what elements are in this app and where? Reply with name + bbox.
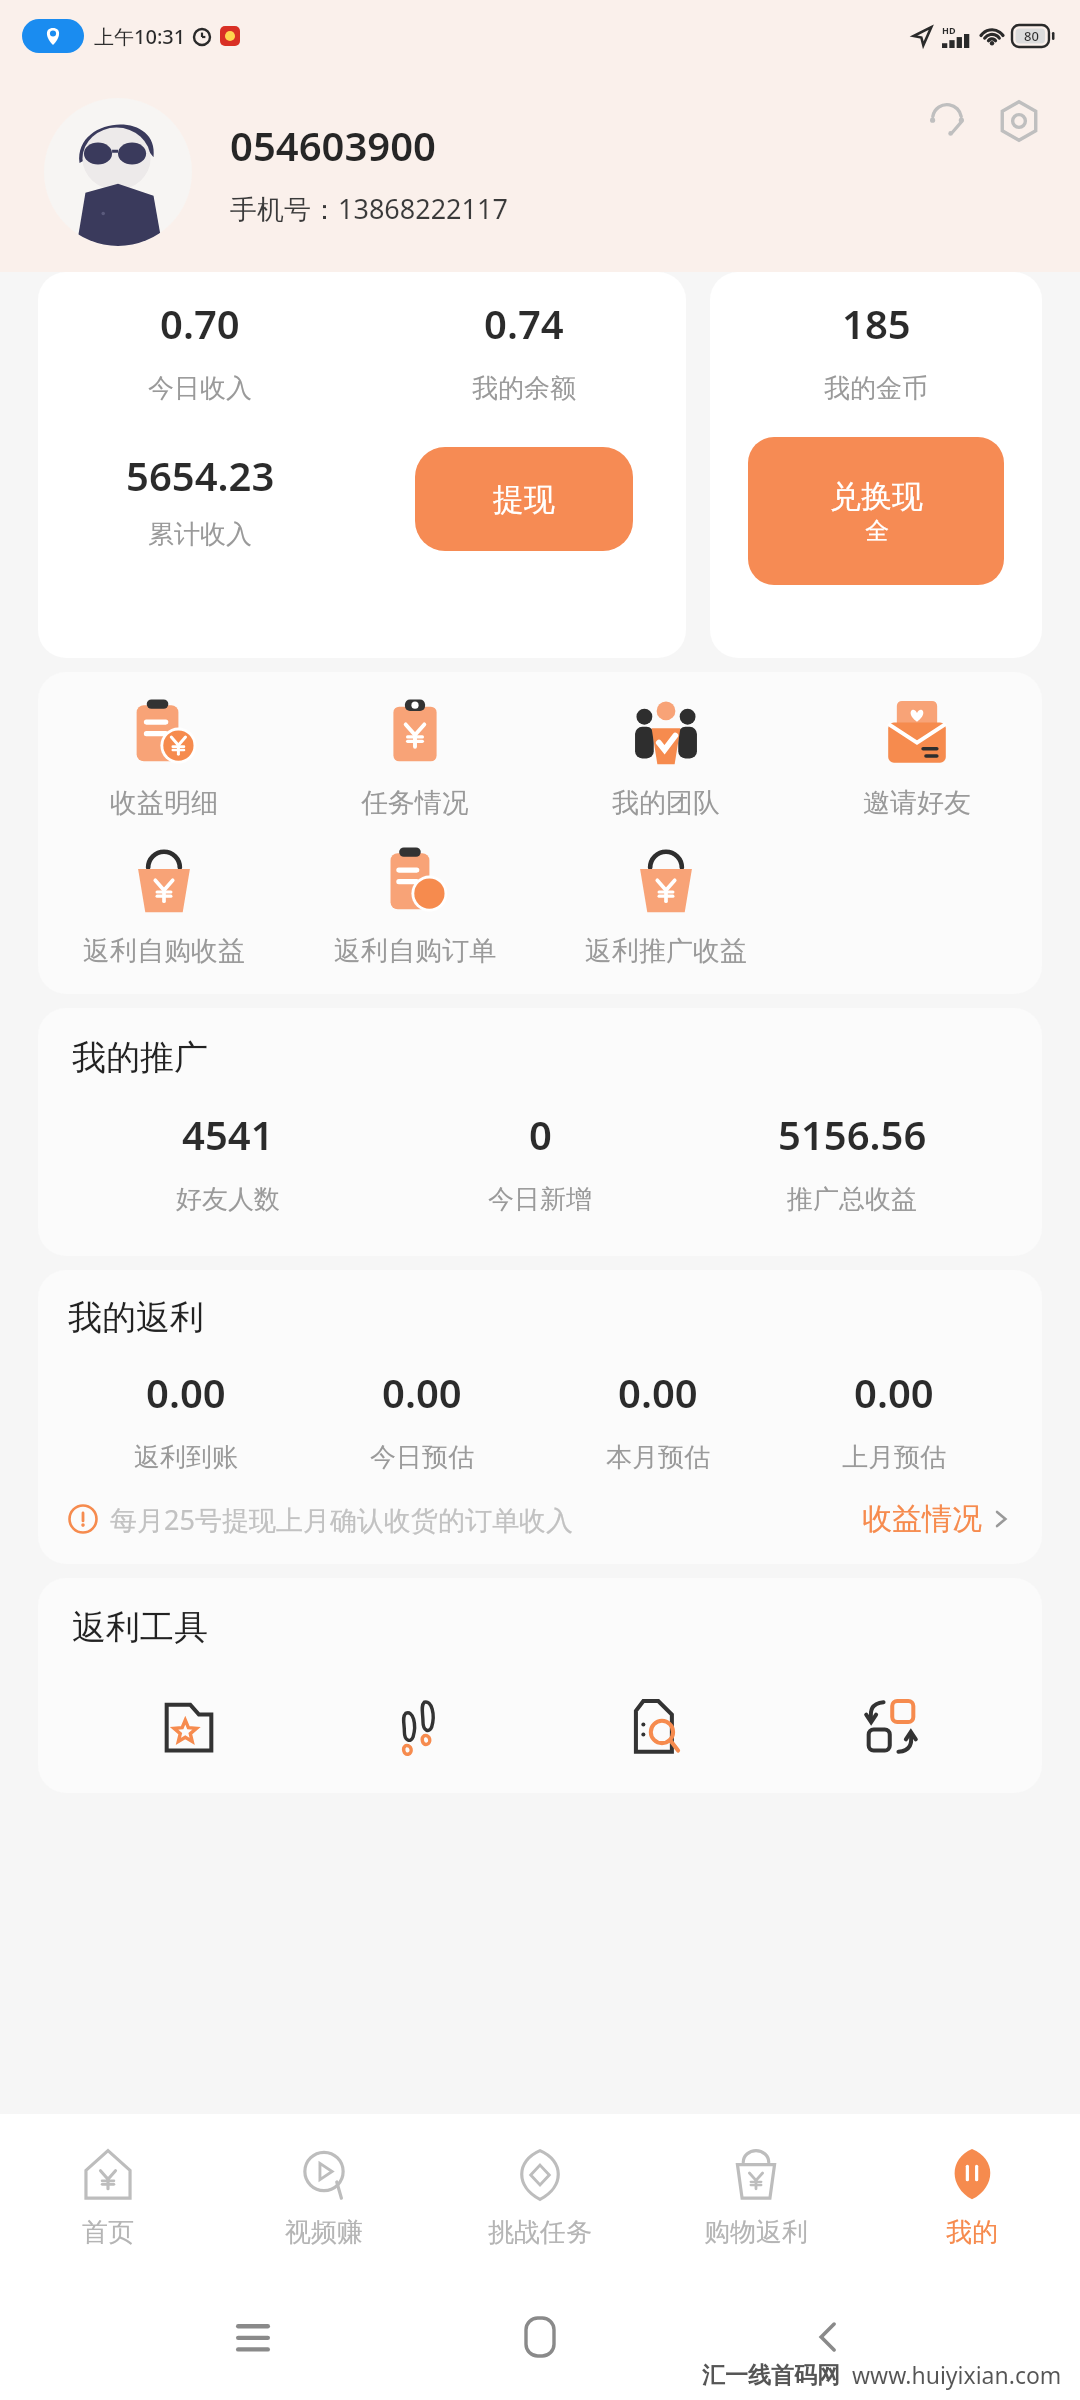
staticText: 返利工具 [72, 1606, 208, 1649]
staticText: www.huiyixian.com [852, 2359, 1062, 2390]
staticText: 购物返利 [704, 2216, 808, 2249]
staticText: 185 [842, 296, 911, 350]
button[interactable]: 返利自购收益 [38, 846, 289, 968]
button[interactable]: Order search [540, 1679, 774, 1775]
staticText: 我的团队 [612, 786, 720, 820]
button[interactable]: 提现 [415, 447, 633, 551]
staticText: 好友人数 [176, 1183, 280, 1216]
staticText: 上午10:31 [94, 23, 186, 50]
staticText: 返利自购订单 [334, 934, 496, 968]
button[interactable]: Back [793, 2302, 863, 2372]
staticText: 5654.23 [126, 448, 275, 502]
staticText: 我的推广 [72, 1036, 208, 1079]
staticText: 邀请好友 [863, 786, 971, 820]
staticText: 今日收入 [148, 372, 252, 405]
staticText: 今日预估 [370, 1441, 474, 1474]
staticText: 累计收入 [148, 518, 252, 551]
staticText: 每月25号提现上月确认收货的订单收入 [110, 1501, 854, 1538]
staticText: 我的 [946, 2216, 998, 2249]
staticText: 5156.56 [778, 1107, 927, 1161]
staticText: 4541 [182, 1107, 274, 1161]
staticText: 我的返利 [68, 1296, 204, 1339]
staticText: 本月预估 [606, 1441, 710, 1474]
staticText: 054603900 [230, 118, 436, 172]
staticText: 0.00 [146, 1365, 226, 1419]
staticText: 0.00 [618, 1365, 698, 1419]
button[interactable]: 返利推广收益 [540, 846, 791, 968]
staticText: 收益明细 [110, 786, 218, 820]
button[interactable]: 挑战任务 [432, 2114, 648, 2280]
button[interactable]: Settings [992, 94, 1046, 148]
staticText: 0.00 [854, 1365, 934, 1419]
staticText: 兑换现 [830, 477, 923, 516]
staticText: 80 [1024, 27, 1039, 45]
button[interactable]: 我的推广 [38, 1008, 1042, 1256]
button[interactable]: Transfer [774, 1679, 1008, 1775]
button[interactable]: Footprints [306, 1679, 540, 1775]
button[interactable]: 185 [710, 272, 1042, 658]
staticText: 提现 [493, 480, 555, 519]
button[interactable]: 首页 [0, 2114, 216, 2280]
staticText: 全 [865, 516, 889, 546]
staticText: 视频赚 [285, 2216, 363, 2249]
staticText: 0.00 [382, 1365, 462, 1419]
staticText: 我的余额 [472, 372, 576, 405]
staticText: 任务情况 [361, 786, 469, 820]
staticText: 手机号：13868222117 [230, 190, 508, 227]
button[interactable]: 视频赚 [216, 2114, 432, 2280]
button[interactable]: Home [505, 2302, 575, 2372]
button[interactable]: Favorites [72, 1679, 306, 1775]
staticText: HD [942, 24, 956, 36]
staticText: 挑战任务 [488, 2216, 592, 2249]
button[interactable]: 0.70 [38, 272, 686, 658]
staticText: 首页 [82, 2216, 134, 2249]
staticText: 今日新增 [488, 1183, 592, 1216]
button[interactable]: 购物返利 [648, 2114, 864, 2280]
staticText: 汇一线首码网 [702, 2361, 840, 2390]
staticText: 我的金币 [824, 372, 928, 405]
staticText: 0 [529, 1107, 552, 1161]
staticText: 收益情况 [862, 1500, 982, 1538]
staticText: 返利自购收益 [83, 934, 245, 968]
button[interactable]: 收益明细 [38, 698, 289, 820]
button[interactable]: 我的团队 [540, 698, 791, 820]
button[interactable]: 收益情况 [862, 1500, 1012, 1538]
button[interactable]: 兑换现 [748, 437, 1004, 585]
button[interactable]: 我的 [864, 2114, 1080, 2280]
staticText: 推广总收益 [787, 1183, 917, 1216]
button[interactable]: 邀请好友 [791, 698, 1042, 820]
staticText: 上月预估 [842, 1441, 946, 1474]
staticText: 0.70 [160, 296, 240, 350]
staticText: 返利推广收益 [585, 934, 747, 968]
button[interactable]: 任务情况 [289, 698, 540, 820]
button[interactable]: Customer service [920, 94, 974, 148]
button[interactable]: 返利自购订单 [289, 846, 540, 968]
staticText: 返利到账 [134, 1441, 238, 1474]
staticText: 0.74 [484, 296, 564, 350]
button[interactable]: Recents [218, 2302, 288, 2372]
